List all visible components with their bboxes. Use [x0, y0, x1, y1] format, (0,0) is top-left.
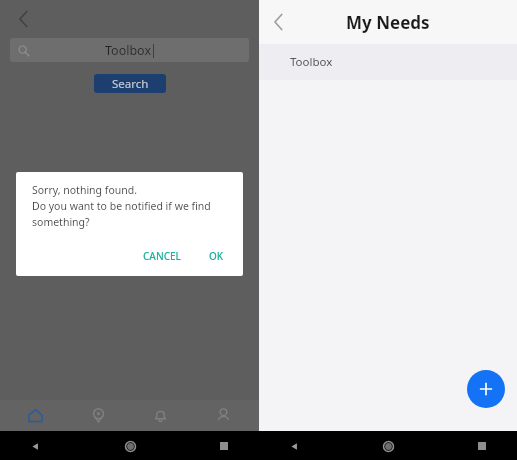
- button[interactable]: Search: [94, 74, 166, 93]
- button[interactable]: Home: [117, 433, 143, 459]
- staticText: Sorry, nothing found.: [32, 183, 137, 197]
- button[interactable]: Add: [467, 370, 505, 408]
- button[interactable]: Profile: [196, 400, 251, 431]
- button[interactable]: Places: [71, 400, 126, 431]
- staticText: Toolbox: [290, 54, 333, 70]
- button[interactable]: Toolbox: [259, 44, 517, 80]
- staticText: My Needs: [346, 11, 430, 34]
- button[interactable]: Notifications: [133, 400, 188, 431]
- button[interactable]: Home: [375, 433, 401, 459]
- staticText: OK: [209, 249, 224, 263]
- button[interactable]: Back: [22, 433, 48, 459]
- button[interactable]: Home: [8, 400, 63, 431]
- staticText: Do you want to be notified if we find: [32, 199, 211, 213]
- button[interactable]: Back: [10, 5, 38, 33]
- button[interactable]: Recent apps: [469, 433, 495, 459]
- button[interactable]: Recent apps: [211, 433, 237, 459]
- staticText: CANCEL: [143, 249, 181, 263]
- button[interactable]: Back: [281, 433, 307, 459]
- button[interactable]: Back: [264, 7, 294, 37]
- button[interactable]: Toolbox: [10, 38, 249, 62]
- button[interactable]: CANCEL: [136, 245, 188, 267]
- staticText: something?: [32, 215, 90, 229]
- staticText: Search: [112, 76, 149, 92]
- button[interactable]: OK: [202, 245, 231, 267]
- staticText: Toolbox: [105, 42, 152, 59]
